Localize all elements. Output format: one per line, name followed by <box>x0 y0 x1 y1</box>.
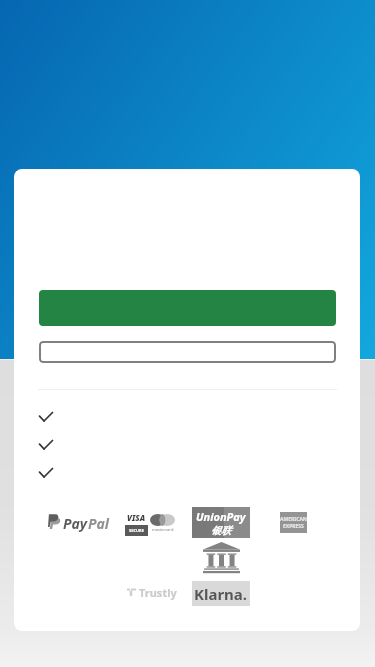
staticText: Pay <box>63 514 88 533</box>
staticText: VISA <box>127 512 146 523</box>
staticText: AMERICAN <box>280 516 307 523</box>
button[interactable]: American Express <box>280 512 307 533</box>
staticText: 银联 <box>211 524 231 537</box>
staticText: Klarna. <box>194 584 248 604</box>
button[interactable]: Klarna <box>192 581 250 606</box>
button[interactable]: Trustly <box>127 585 177 600</box>
button[interactable]: Feature included <box>39 435 336 455</box>
button[interactable]: PayPal <box>48 514 110 533</box>
button[interactable]: Mastercard <box>150 514 175 532</box>
staticText: UnionPay <box>196 509 246 524</box>
staticText: Trustly <box>139 585 177 600</box>
staticText: SECURE <box>129 528 144 533</box>
button[interactable]: Continue to checkout <box>39 290 336 326</box>
button[interactable]: UnionPay <box>192 507 250 538</box>
button[interactable]: Visa Secure <box>125 512 148 536</box>
button[interactable]: Feature included <box>39 463 336 483</box>
button[interactable]: Bank transfer <box>203 542 240 574</box>
staticText: mastercard <box>152 527 174 532</box>
staticText: Pal <box>88 514 110 533</box>
button[interactable]: Cancel <box>39 341 336 363</box>
staticText: EXPRESS <box>283 523 304 530</box>
button[interactable]: Feature included <box>39 407 336 427</box>
